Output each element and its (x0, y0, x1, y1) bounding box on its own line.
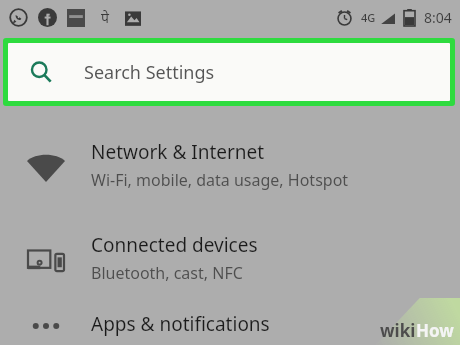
staticText: Search Settings (84, 60, 215, 85)
staticText: How (416, 319, 454, 342)
button[interactable]: Connected devices (0, 213, 460, 306)
staticText: Bluetooth, cast, NFC (91, 262, 243, 284)
button[interactable]: Network & Internet (0, 120, 460, 213)
button[interactable]: Apps & notifications (0, 306, 460, 345)
staticText: Wi-Fi, mobile, data usage, Hotspot (91, 169, 349, 191)
staticText: 4G (361, 10, 376, 25)
other: Search (30, 61, 52, 83)
staticText: Apps & notifications (91, 311, 270, 337)
staticText: wiki (380, 319, 416, 342)
button[interactable]: Search (8, 43, 450, 101)
staticText: Network & Internet (91, 139, 265, 165)
staticText: 8:04 (424, 8, 452, 27)
staticText: Connected devices (91, 232, 258, 258)
staticText: पे (101, 8, 109, 27)
